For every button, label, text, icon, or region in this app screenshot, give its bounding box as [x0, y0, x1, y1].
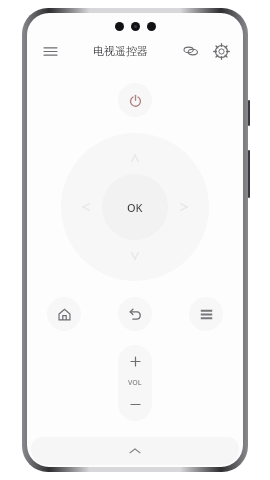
button[interactable]: Menu — [37, 38, 63, 64]
button[interactable]: Back — [118, 297, 152, 331]
button[interactable]: OK — [102, 174, 168, 240]
staticText: VOL — [128, 378, 142, 388]
button[interactable]: Connect — [179, 39, 203, 63]
staticText: 电视遥控器 — [93, 44, 148, 58]
button[interactable]: Volume down — [118, 388, 152, 421]
button[interactable]: Expand panel — [31, 437, 239, 465]
staticText: OK — [127, 200, 143, 215]
button[interactable]: Volume up — [118, 345, 152, 378]
button[interactable]: Menu — [189, 297, 223, 331]
button[interactable]: Home — [47, 297, 81, 331]
button[interactable]: Power — [118, 83, 152, 117]
button[interactable]: Settings — [209, 39, 233, 63]
